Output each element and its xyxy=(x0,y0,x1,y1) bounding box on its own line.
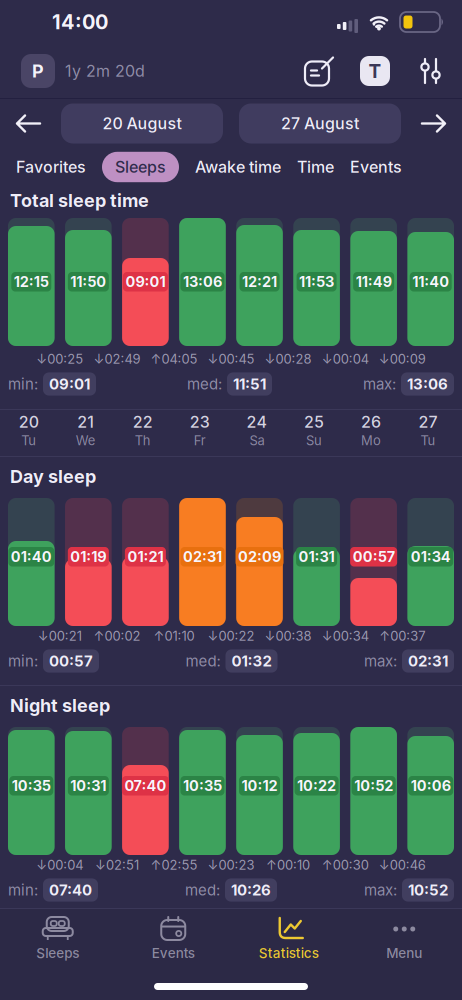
staticText: max: xyxy=(363,375,396,393)
staticText: 02:09 xyxy=(238,548,281,565)
staticText: Day sleep xyxy=(10,466,96,487)
staticText: min: xyxy=(8,375,38,393)
staticText: 11:40 xyxy=(412,273,449,290)
staticText: Total sleep time xyxy=(10,190,149,211)
staticText: T xyxy=(368,59,381,82)
staticText: 00:57 xyxy=(49,652,93,670)
staticText: 10:35 xyxy=(183,777,222,794)
staticText: ↑00:10 xyxy=(266,857,310,873)
staticText: Tu xyxy=(21,433,36,448)
staticText: Favorites xyxy=(16,157,86,177)
staticText: min: xyxy=(8,881,38,899)
staticText: ↓00:22 xyxy=(207,628,254,644)
staticText: ↓02:49 xyxy=(93,351,140,367)
button[interactable]: Events xyxy=(350,157,402,177)
staticText: 12:21 xyxy=(242,273,277,290)
staticText: 07:40 xyxy=(49,881,92,899)
staticText: ↓00:04 xyxy=(322,351,369,367)
button[interactable]: Sleeps xyxy=(102,152,179,182)
button[interactable]: 20 August xyxy=(61,103,223,143)
staticText: 14:00 xyxy=(52,10,108,34)
button[interactable]: Awake time xyxy=(195,157,281,177)
button[interactable]: Events xyxy=(115,917,231,961)
staticText: 10:12 xyxy=(241,777,277,794)
button[interactable]: Menu xyxy=(346,917,462,961)
staticText: Su xyxy=(306,433,322,448)
button[interactable]: Previous week xyxy=(15,112,42,134)
staticText: ↓00:23 xyxy=(207,857,254,873)
staticText: ↑04:05 xyxy=(150,351,197,367)
button[interactable]: Text size xyxy=(360,56,390,86)
staticText: Night sleep xyxy=(10,695,110,716)
button[interactable]: 27 August xyxy=(239,103,401,143)
staticText: 01:40 xyxy=(11,548,52,565)
staticText: Events xyxy=(152,945,195,961)
staticText: 13:06 xyxy=(407,375,448,393)
button[interactable]: Statistics xyxy=(231,917,346,961)
staticText: 01:34 xyxy=(411,548,451,565)
staticText: 11:53 xyxy=(299,273,334,290)
staticText: 01:31 xyxy=(299,548,335,565)
staticText: ↓00:38 xyxy=(265,628,312,644)
staticText: ↓00:21 xyxy=(38,628,82,644)
staticText: min: xyxy=(8,652,38,670)
button[interactable]: Next week xyxy=(420,112,447,134)
staticText: max: xyxy=(364,652,397,670)
staticText: Menu xyxy=(386,945,422,961)
staticText: 10:22 xyxy=(297,777,336,794)
staticText: 00:57 xyxy=(353,548,395,565)
staticText: Th xyxy=(135,433,151,448)
staticText: ↑00:02 xyxy=(93,628,140,644)
staticText: 09:01 xyxy=(125,273,165,290)
staticText: 01:21 xyxy=(127,548,163,565)
staticText: 22 xyxy=(133,412,153,432)
button[interactable]: Sleeps xyxy=(0,917,115,961)
staticText: 09:01 xyxy=(49,375,90,393)
staticText: 21 xyxy=(77,412,94,432)
staticText: 27 xyxy=(419,412,438,432)
staticText: 20 xyxy=(19,412,39,432)
staticText: ↓00:45 xyxy=(207,351,254,367)
staticText: Sleeps xyxy=(36,945,79,961)
staticText: ↑02:55 xyxy=(150,857,197,873)
staticText: 27 August xyxy=(281,114,359,133)
staticText: 11:51 xyxy=(233,375,266,393)
staticText: We xyxy=(76,433,96,448)
button[interactable]: Time xyxy=(297,157,334,177)
button[interactable]: Profile xyxy=(21,54,55,88)
staticText: max: xyxy=(364,881,397,899)
staticText: 02:31 xyxy=(408,652,448,670)
staticText: ↓00:09 xyxy=(379,351,426,367)
staticText: Time xyxy=(297,157,334,177)
staticText: Events xyxy=(350,157,402,177)
staticText: ↓00:34 xyxy=(322,628,369,644)
staticText: Tu xyxy=(421,433,436,448)
staticText: 10:26 xyxy=(231,881,271,899)
staticText: 01:19 xyxy=(70,548,106,565)
staticText: 11:50 xyxy=(70,273,106,290)
staticText: 10:35 xyxy=(12,777,51,794)
staticText: 1y 2m 20d xyxy=(65,61,145,81)
staticText: 11:49 xyxy=(356,273,392,290)
staticText: ↓00:46 xyxy=(379,857,426,873)
staticText: 10:06 xyxy=(411,777,451,794)
staticText: 13:06 xyxy=(183,273,222,290)
staticText: Awake time xyxy=(195,157,281,177)
staticText: med: xyxy=(185,652,220,670)
staticText: 24 xyxy=(246,412,267,432)
button[interactable]: Filters xyxy=(416,57,444,85)
staticText: ↓00:28 xyxy=(265,351,312,367)
staticText: 07:40 xyxy=(124,777,166,794)
staticText: P xyxy=(32,60,44,82)
staticText: 02:31 xyxy=(183,548,222,565)
button[interactable]: Favorites xyxy=(16,157,86,177)
button[interactable]: Add note xyxy=(305,56,334,85)
staticText: med: xyxy=(185,881,220,899)
staticText: 26 xyxy=(361,412,381,432)
staticText: 20 August xyxy=(102,114,181,133)
staticText: 25 xyxy=(304,412,324,432)
staticText: 10:31 xyxy=(70,777,106,794)
staticText: Mo xyxy=(361,433,381,448)
staticText: ↑00:37 xyxy=(379,628,425,644)
staticText: ↓00:04 xyxy=(36,857,83,873)
